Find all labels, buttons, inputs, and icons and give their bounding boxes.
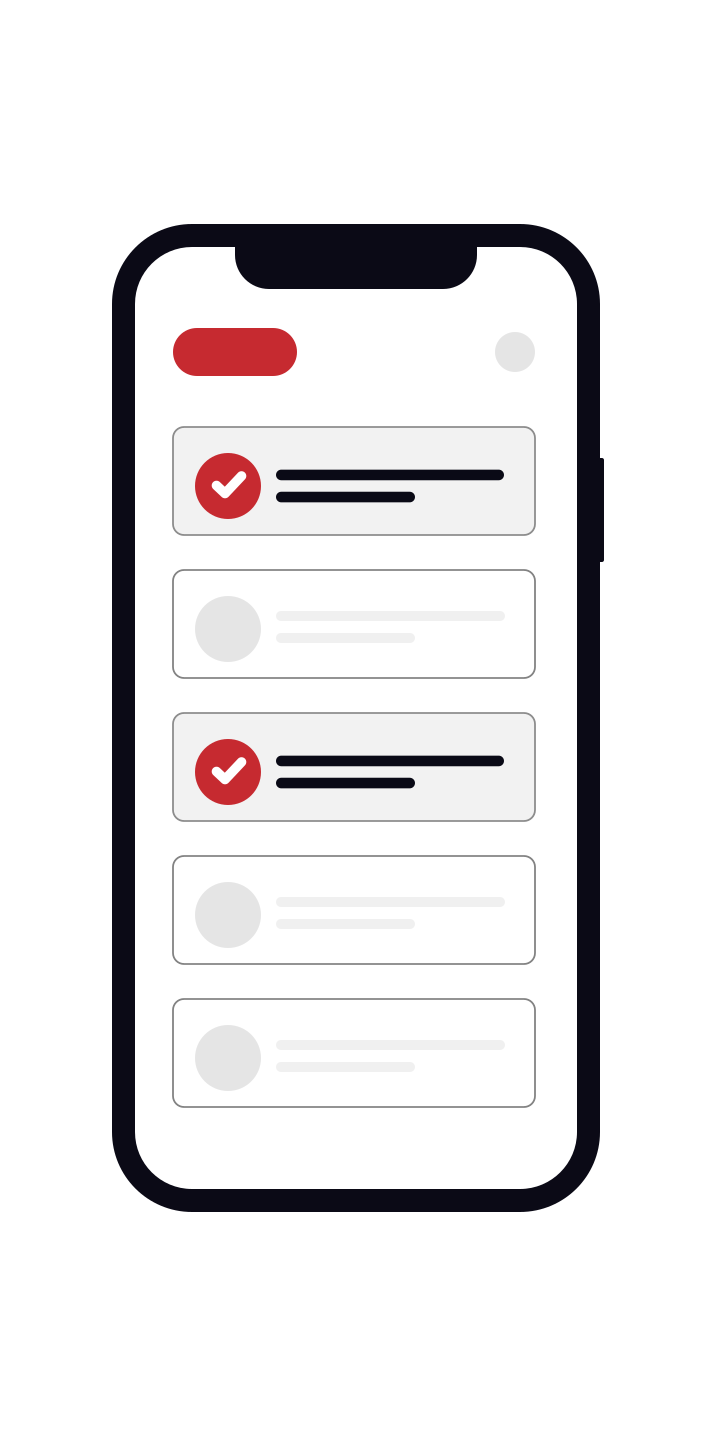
button[interactable]: Pending task: [173, 856, 535, 964]
button[interactable]: Profile: [495, 332, 535, 372]
button[interactable]: Completed task: [173, 713, 535, 821]
button[interactable]: Pending task: [173, 999, 535, 1107]
button[interactable]: Pending task: [173, 570, 535, 678]
button[interactable]: Add task: [173, 328, 297, 376]
button[interactable]: Completed task: [173, 427, 535, 535]
